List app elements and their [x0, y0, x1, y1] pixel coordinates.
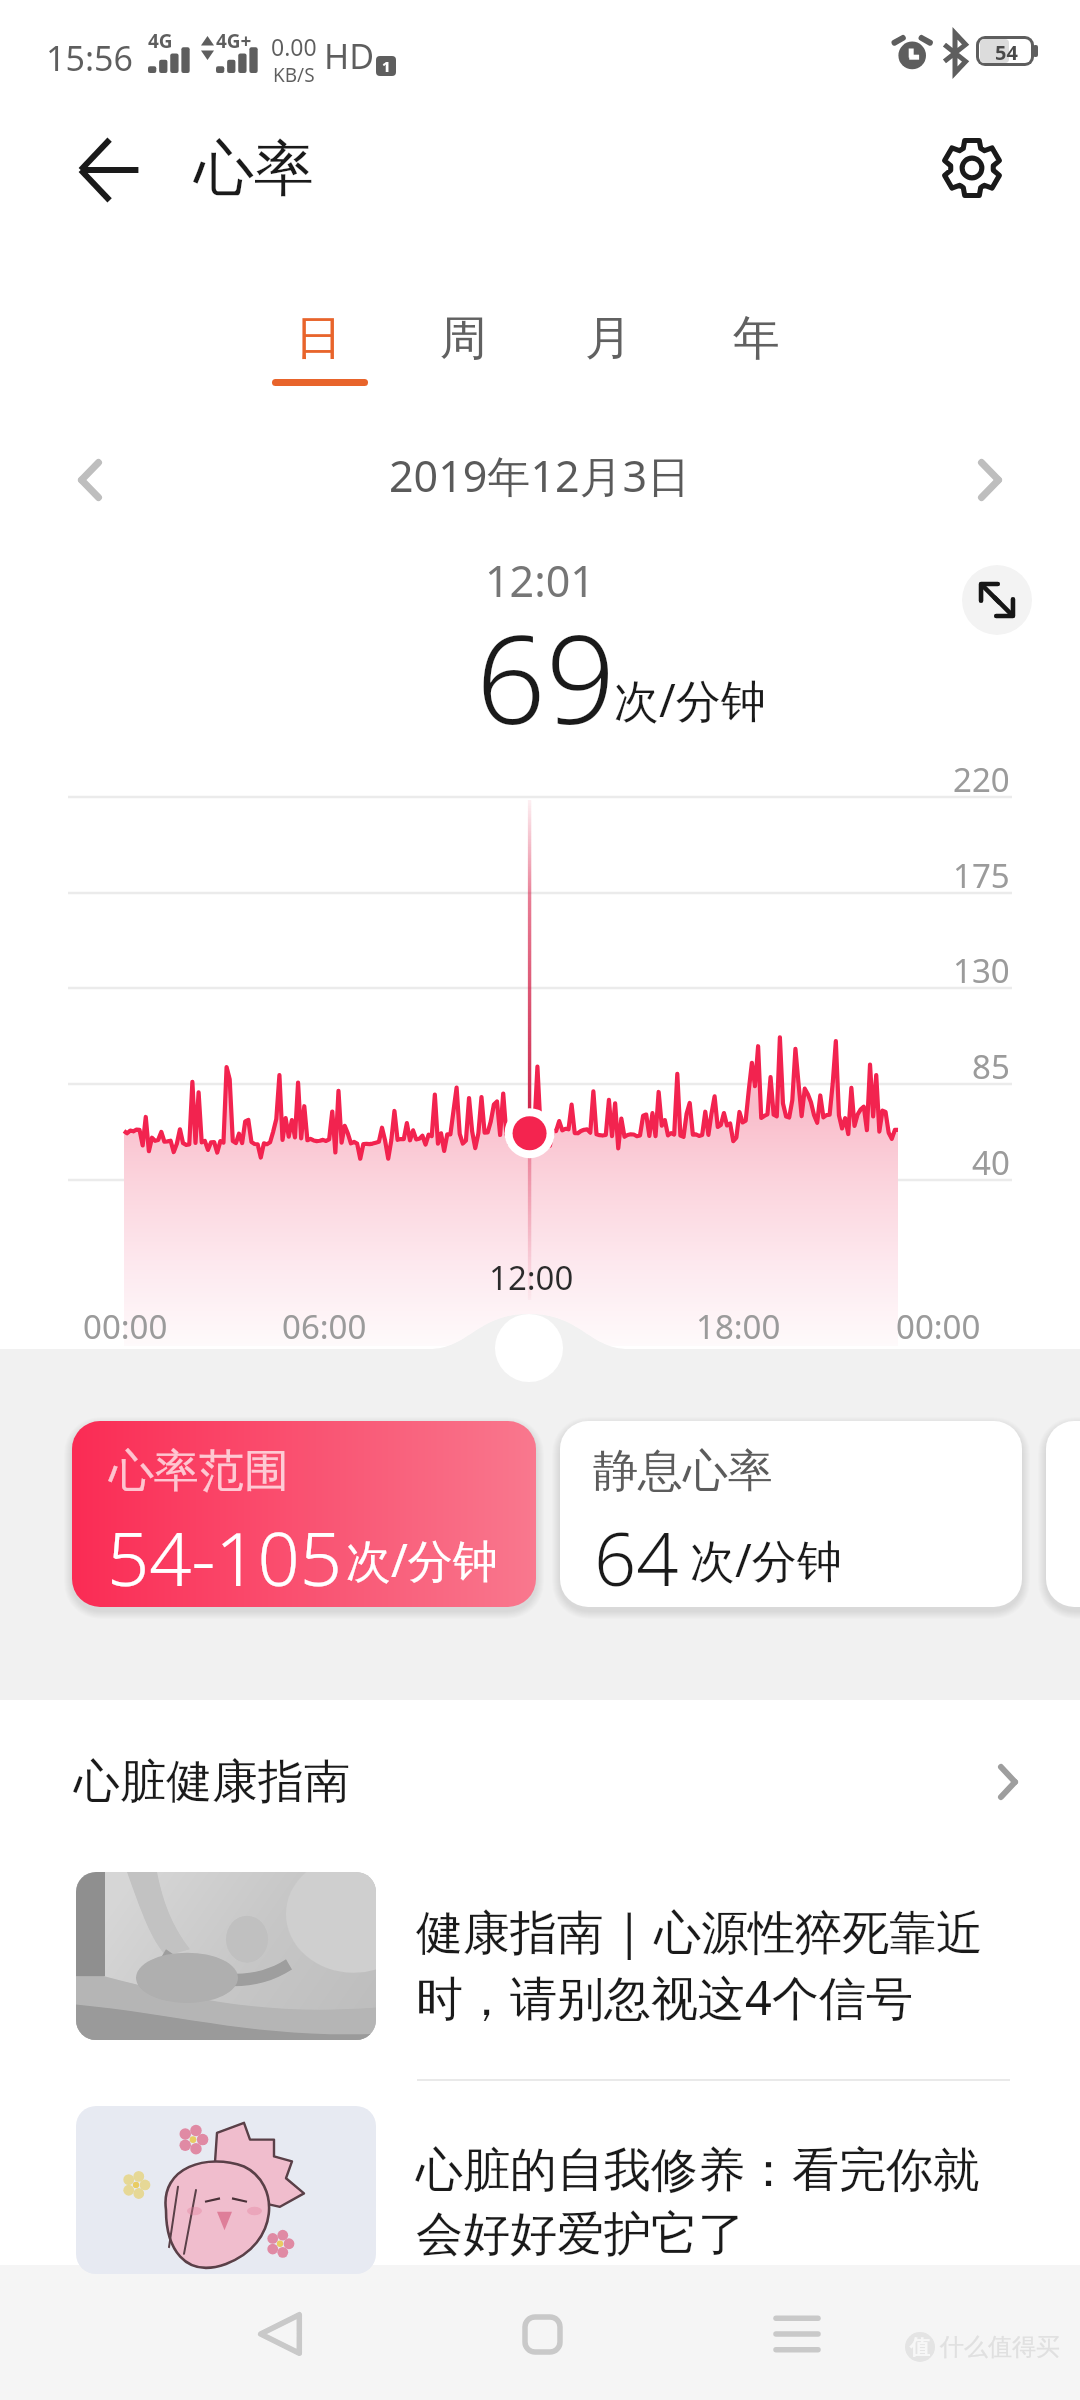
staticText: HD	[324, 33, 375, 79]
staticText: 值	[910, 2335, 930, 2360]
staticText: 15:56	[46, 35, 133, 81]
staticText: 64	[594, 1507, 679, 1607]
button[interactable]: 周	[401, 280, 525, 390]
staticText: 心率范围	[109, 1443, 289, 1500]
button[interactable]: Next day	[950, 440, 1030, 520]
staticText: 什么值得买	[940, 2332, 1060, 2362]
staticText: 健康指南 | 心源性猝死靠近 时，请别忽视这4个信号	[416, 1899, 984, 2029]
button[interactable]: Settings	[927, 123, 1017, 213]
staticText: 12:00	[489, 1255, 574, 1300]
button[interactable]: 健康指南 | 心源性猝死靠近 时，请别忽视这4个信号	[0, 1860, 1080, 2054]
button[interactable]: Home	[482, 2274, 602, 2394]
staticText: 次/分钟	[346, 1529, 498, 1590]
button[interactable]: Back	[220, 2274, 340, 2394]
staticText: 0.00	[271, 31, 317, 62]
staticText: 06:00	[282, 1304, 367, 1349]
staticText: 54-105	[107, 1507, 343, 1607]
button[interactable]: Expand chart	[962, 565, 1032, 635]
staticText: 1	[382, 56, 391, 76]
button[interactable]: 心脏健康指南	[0, 1744, 1080, 1820]
staticText: 12:01	[485, 551, 595, 610]
staticText: 次/分钟	[690, 1529, 842, 1590]
button[interactable]: 年	[694, 280, 818, 390]
staticText: 18:00	[696, 1304, 781, 1349]
staticText: 心率	[194, 131, 314, 207]
staticText: 周	[440, 309, 487, 368]
staticText: 月	[585, 309, 632, 368]
staticText: 00:00	[83, 1304, 168, 1349]
staticText: 年	[733, 309, 780, 368]
button[interactable]: Recents	[737, 2274, 857, 2394]
staticText: 日	[295, 309, 342, 368]
staticText: 85	[972, 1044, 1010, 1089]
staticText: 130	[953, 948, 1010, 993]
staticText: 心脏健康指南	[74, 1753, 350, 1811]
button[interactable]: 日	[256, 280, 380, 390]
staticText: 心脏的自我修养：看完你就 会好好爱护它了	[416, 2141, 980, 2264]
staticText: 4G	[148, 28, 173, 54]
staticText: 69	[476, 594, 616, 760]
staticText: 4G+	[216, 28, 252, 54]
staticText: 00:00	[896, 1304, 981, 1349]
button[interactable]: Back	[63, 126, 155, 214]
staticText: 40	[972, 1140, 1010, 1185]
button[interactable]: 心脏的自我修养：看完你就 会好好爱护它了	[0, 2096, 1080, 2266]
button[interactable]	[1046, 1421, 1080, 1607]
staticText: 54	[995, 39, 1018, 63]
button[interactable]: Previous day	[50, 440, 130, 520]
button[interactable]: 静息心率	[560, 1421, 1022, 1607]
staticText: 175	[953, 853, 1010, 898]
button[interactable]: 心率范围	[72, 1421, 536, 1607]
button[interactable]: 月	[546, 280, 670, 390]
staticText: 220	[953, 757, 1010, 802]
staticText: 次/分钟	[614, 669, 766, 730]
staticText: 静息心率	[593, 1443, 773, 1500]
staticText: KB/S	[273, 62, 315, 88]
staticText: 2019年12月3日	[389, 446, 691, 505]
